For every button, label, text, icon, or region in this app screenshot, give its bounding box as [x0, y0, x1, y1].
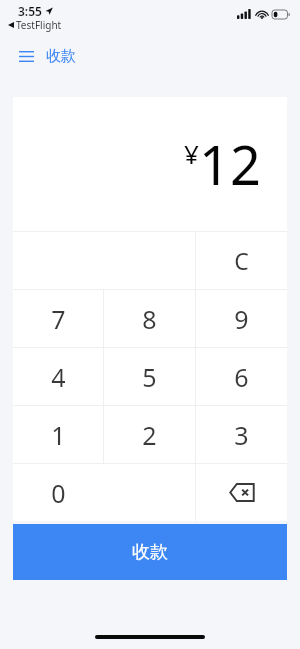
staticText: 3:55 — [18, 3, 42, 19]
staticText: 收款 — [132, 541, 168, 564]
button[interactable]: C — [196, 232, 287, 289]
staticText: 0 — [51, 476, 66, 510]
button[interactable]: 收款 — [13, 524, 287, 580]
staticText: TestFlight — [16, 18, 62, 32]
staticText: 6 — [234, 360, 249, 394]
staticText: 1 — [51, 418, 66, 452]
button[interactable]: 6 — [196, 348, 287, 405]
staticText: 5 — [142, 360, 157, 394]
button[interactable]: 2 — [104, 406, 195, 463]
staticText: 9 — [234, 302, 249, 336]
staticText: 3 — [234, 418, 249, 452]
staticText: ¥ — [184, 136, 199, 171]
staticText: 2 — [142, 418, 157, 452]
button[interactable]: 7 — [13, 290, 103, 347]
button[interactable]: 1 — [13, 406, 103, 463]
staticText: 7 — [51, 302, 66, 336]
staticText: 12 — [199, 127, 261, 201]
button[interactable]: 3 — [196, 406, 287, 463]
button[interactable]: Menu — [14, 44, 38, 68]
button[interactable]: 收款 — [46, 47, 76, 66]
button[interactable]: 4 — [13, 348, 103, 405]
staticText: 4 — [51, 360, 66, 394]
button[interactable]: 5 — [104, 348, 195, 405]
button[interactable]: Backspace — [196, 464, 287, 521]
button[interactable]: 0 — [13, 464, 195, 521]
button[interactable]: 8 — [104, 290, 195, 347]
staticText: 8 — [142, 302, 157, 336]
staticText: C — [234, 245, 249, 276]
button[interactable]: 9 — [196, 290, 287, 347]
